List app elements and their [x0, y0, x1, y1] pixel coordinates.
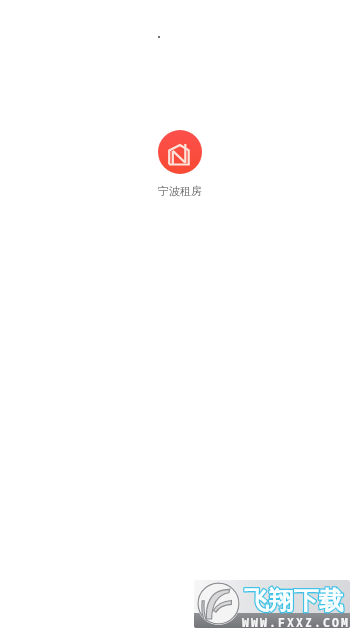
staticText: 飞翔下载: [244, 585, 344, 616]
staticText: 宁波租房: [158, 184, 202, 198]
staticText: 飞翔下载: [244, 585, 344, 616]
button[interactable]: 宁波租房: [158, 130, 202, 174]
staticText: WWW.FXXZ.COM: [242, 615, 350, 628]
